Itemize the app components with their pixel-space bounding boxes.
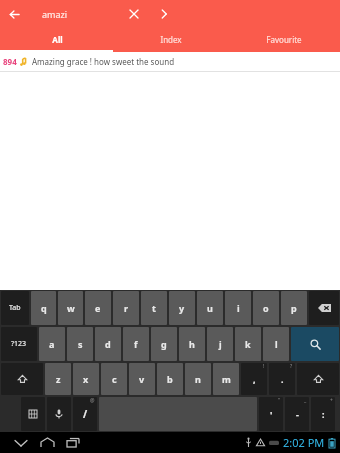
staticText: Favourite — [266, 34, 302, 45]
button[interactable]: Shift — [297, 363, 339, 395]
staticText: 2:02 PM — [283, 435, 325, 450]
staticText: ? — [290, 363, 293, 370]
staticText: y — [179, 302, 185, 314]
staticText: ?123 — [11, 339, 27, 349]
staticText: 894 — [3, 56, 17, 67]
button[interactable]: a — [39, 327, 65, 361]
button[interactable]: Back — [8, 432, 34, 453]
button[interactable]: q — [31, 291, 56, 325]
staticText: o — [263, 302, 269, 314]
button[interactable]: Tab — [1, 291, 29, 325]
button[interactable]: r — [113, 291, 139, 325]
staticText: m — [222, 373, 231, 385]
staticText: - — [296, 408, 299, 420]
staticText: i — [237, 302, 240, 314]
staticText: x — [83, 373, 89, 385]
button[interactable]: o — [253, 291, 279, 325]
button[interactable]: x — [73, 363, 99, 395]
staticText: u — [207, 302, 213, 314]
staticText: f — [134, 338, 138, 350]
staticText: Index — [160, 34, 182, 45]
button[interactable]: p — [281, 291, 307, 325]
button[interactable]: Search — [291, 327, 339, 361]
staticText: : — [322, 408, 325, 420]
button[interactable]: Index — [114, 28, 227, 50]
button[interactable]: Recent apps — [60, 432, 86, 453]
button[interactable]: t — [141, 291, 167, 325]
staticText: a — [49, 338, 55, 350]
staticText: " — [278, 397, 281, 404]
staticText: . — [281, 373, 284, 385]
button[interactable]: Next result — [154, 4, 174, 24]
button[interactable]: z — [45, 363, 71, 395]
button[interactable]: Back — [0, 0, 28, 28]
staticText: Tab — [9, 303, 21, 313]
button[interactable]: , — [241, 363, 267, 395]
button[interactable]: Home — [34, 432, 60, 453]
staticText: ' — [270, 408, 273, 420]
button[interactable]: h — [179, 327, 205, 361]
button[interactable]: l — [263, 327, 289, 361]
button[interactable]: ' — [259, 397, 283, 431]
button[interactable]: s — [67, 327, 93, 361]
staticText: j — [219, 338, 222, 350]
button[interactable]: Backspace — [309, 291, 339, 325]
staticText: l — [275, 338, 278, 350]
staticText: s — [78, 338, 83, 350]
staticText: z — [56, 373, 61, 385]
button[interactable]: u — [197, 291, 223, 325]
button[interactable]: : — [311, 397, 335, 431]
button[interactable]: w — [58, 291, 83, 325]
staticText: n — [195, 373, 201, 385]
button[interactable]: Shift — [1, 363, 43, 395]
staticText: c — [112, 373, 117, 385]
button[interactable]: All — [0, 28, 114, 50]
button[interactable]: j — [207, 327, 233, 361]
staticText: _ — [304, 397, 307, 404]
button[interactable]: i — [225, 291, 251, 325]
staticText: r — [124, 302, 129, 314]
staticText: amazi — [42, 8, 68, 20]
button[interactable]: Voice input — [47, 397, 71, 431]
button[interactable]: v — [129, 363, 155, 395]
staticText: q — [41, 302, 47, 314]
staticText: w — [67, 302, 75, 314]
button[interactable]: Switch keyboard — [21, 397, 45, 431]
button[interactable]: n — [185, 363, 211, 395]
staticText: v — [139, 373, 145, 385]
button[interactable]: ?123 — [1, 327, 37, 361]
staticText: d — [105, 338, 111, 350]
button[interactable]: - — [285, 397, 309, 431]
staticText: ! — [263, 363, 265, 370]
staticText: e — [95, 302, 101, 314]
staticText: b — [167, 373, 173, 385]
button[interactable]: 894 — [0, 52, 340, 72]
staticText: g — [161, 338, 167, 350]
staticText: k — [245, 338, 251, 350]
staticText: p — [291, 302, 297, 314]
button[interactable]: e — [85, 291, 111, 325]
staticText: h — [189, 338, 195, 350]
button[interactable]: g — [151, 327, 177, 361]
button[interactable]: d — [95, 327, 121, 361]
staticText: + — [330, 397, 333, 404]
staticText: , — [253, 373, 256, 385]
staticText: / — [83, 407, 88, 421]
button[interactable]: m — [213, 363, 239, 395]
button[interactable]: f — [123, 327, 149, 361]
button[interactable]: Favourite — [227, 28, 340, 50]
button[interactable]: / — [73, 397, 97, 431]
staticText: @ — [90, 397, 95, 404]
button[interactable]: c — [101, 363, 127, 395]
button[interactable]: y — [169, 291, 195, 325]
staticText: Amazing grace ! how sweet the sound — [32, 56, 175, 67]
button[interactable]: b — [157, 363, 183, 395]
staticText: All — [52, 34, 63, 45]
button[interactable]: k — [235, 327, 261, 361]
button[interactable]: Clear — [124, 4, 144, 24]
button[interactable]: . — [269, 363, 295, 395]
staticText: t — [152, 302, 156, 314]
